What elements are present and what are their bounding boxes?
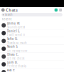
button[interactable]: Ava P. [0, 68, 64, 72]
staticText: Recent [1, 17, 11, 21]
staticText: Olivia C. [7, 53, 19, 56]
staticText: Liam B. [7, 61, 18, 64]
staticText: Ava P. [7, 68, 15, 72]
staticText: Noah S. [7, 45, 18, 49]
button[interactable]: Profile [0, 8, 6, 12]
button[interactable]: Olivia C. [0, 53, 64, 61]
button[interactable]: New chat [53, 8, 59, 11]
staticText: Sofia G. [7, 37, 18, 41]
staticText: On my way now [7, 49, 27, 52]
button[interactable]: Liam B. [0, 61, 64, 68]
button[interactable]: Sofia G. [0, 37, 64, 45]
staticText: Perfect thanks [7, 64, 26, 68]
staticText: Emma W. [7, 22, 20, 25]
staticText: Let me check [7, 57, 24, 60]
button[interactable]: Emma W. [0, 22, 64, 29]
button[interactable]: Camera [59, 8, 64, 11]
button[interactable]: Daniel L. [0, 29, 64, 37]
button[interactable]: Search [0, 13, 64, 17]
staticText: Sounds great [7, 25, 25, 29]
staticText: Search [5, 13, 13, 16]
staticText: I will send it [7, 33, 25, 37]
button[interactable]: Noah S. [0, 45, 64, 53]
staticText: Thanks so much [7, 41, 27, 45]
staticText: Chats [6, 7, 18, 13]
staticText: Daniel L. [7, 29, 20, 33]
